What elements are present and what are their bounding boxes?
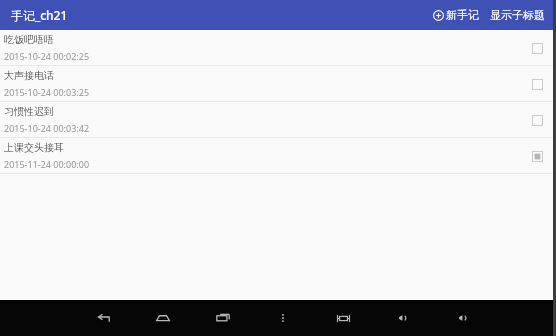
button[interactable]: More options (268, 303, 298, 333)
button[interactable]: 上课交头接耳 (0, 138, 556, 174)
staticText: 2015-10-24 00:02:25 (4, 50, 90, 62)
other: 新手记 (433, 10, 444, 21)
staticText: 上课交头接耳 (4, 141, 64, 154)
button[interactable]: Volume down (388, 303, 418, 333)
button[interactable]: Home (148, 303, 178, 333)
button[interactable]: 吃饭吧唔唔 (0, 30, 556, 66)
button[interactable]: 大声接电话 (0, 66, 556, 102)
button[interactable]: Volume up (448, 303, 478, 333)
staticText: 吃饭吧唔唔 (4, 33, 54, 46)
staticText: 显示子标题 (490, 8, 545, 22)
button[interactable]: 习惯性迟到 (0, 102, 556, 138)
button[interactable]: Screenshot (328, 303, 358, 333)
staticText: 2015-10-24 00:03:42 (4, 122, 90, 134)
button[interactable]: 显示子标题 (488, 5, 547, 25)
staticText: 2015-11-24 00:00:00 (4, 158, 90, 170)
staticText: 新手记 (446, 8, 479, 22)
button[interactable]: Recents (208, 303, 238, 333)
button[interactable]: 选择 (526, 37, 548, 59)
button[interactable]: 新手记 (431, 5, 481, 25)
staticText: 2015-10-24 00:03:25 (4, 86, 90, 98)
staticText: 大声接电话 (4, 69, 54, 82)
button[interactable]: 选择 (526, 109, 548, 131)
button[interactable]: 选择 (526, 73, 548, 95)
button[interactable]: Back (88, 303, 118, 333)
staticText: 习惯性迟到 (4, 105, 54, 118)
staticText: 手记_ch21 (11, 7, 68, 23)
button[interactable]: 选择 (526, 145, 548, 167)
